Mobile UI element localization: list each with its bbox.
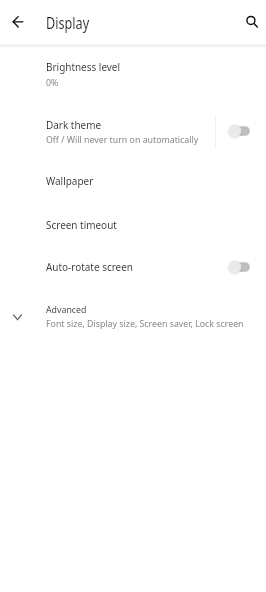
staticText: Auto-rotate screen (46, 260, 133, 274)
staticText: Dark theme (46, 118, 102, 132)
button[interactable]: Screen timeout (0, 209, 266, 239)
button[interactable]: Navigate up (5, 10, 30, 35)
staticText: Wallpaper (46, 174, 94, 188)
staticText: Screen timeout (46, 218, 117, 232)
button[interactable]: Search (234, 10, 260, 36)
button[interactable]: Auto-rotate screen (228, 253, 262, 281)
button[interactable]: Brightness level (0, 51, 266, 91)
button[interactable]: Auto-rotate screen (0, 251, 266, 281)
staticText: Advanced (46, 304, 87, 316)
staticText: Off / Will never turn on automatically (46, 134, 199, 146)
staticText: Font size, Display size, Screen saver, L… (46, 318, 244, 330)
button[interactable]: Advanced (0, 294, 266, 336)
button[interactable]: Dark theme (228, 117, 262, 145)
staticText: 0% (46, 77, 59, 89)
staticText: Brightness level (46, 60, 121, 74)
button[interactable]: Dark theme (0, 109, 266, 154)
staticText: Display (46, 12, 89, 34)
button[interactable]: Wallpaper (0, 165, 266, 195)
